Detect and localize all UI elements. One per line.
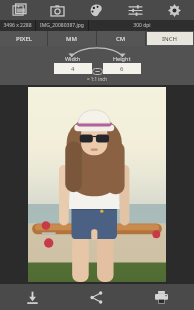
button[interactable]: PIXEL <box>1 32 46 45</box>
button[interactable]: 6 <box>103 63 141 74</box>
staticText: Width <box>65 55 81 62</box>
staticText: 3496 x 2288 <box>3 22 32 29</box>
button[interactable]: Link aspect ratio <box>92 68 103 75</box>
staticText: Height <box>113 55 131 62</box>
staticText: IMG_20080387.jpg <box>40 22 84 29</box>
button[interactable]: Camera <box>38 0 77 20</box>
button[interactable]: Download <box>0 284 64 310</box>
button[interactable]: Settings <box>155 0 194 20</box>
staticText: 6 <box>120 65 124 73</box>
button[interactable]: Gallery <box>0 0 38 20</box>
staticText: = 1:1 inch <box>87 76 108 82</box>
staticText: INCH <box>162 35 178 43</box>
staticText: MM <box>66 35 78 43</box>
button[interactable]: Share <box>64 284 129 310</box>
button[interactable]: Adjust <box>116 0 155 20</box>
staticText: PIXEL <box>16 35 32 43</box>
button[interactable]: CM <box>98 32 144 45</box>
button[interactable]: Palette <box>77 0 116 20</box>
button[interactable]: Photo preview <box>28 87 166 282</box>
button[interactable]: MM <box>49 32 95 45</box>
staticText: 300 dpi <box>133 22 151 29</box>
button[interactable]: 4 <box>54 63 92 74</box>
staticText: CM <box>116 35 126 43</box>
button[interactable]: Print <box>129 284 194 310</box>
staticText: 4 <box>71 65 75 73</box>
button[interactable]: INCH <box>147 32 193 45</box>
